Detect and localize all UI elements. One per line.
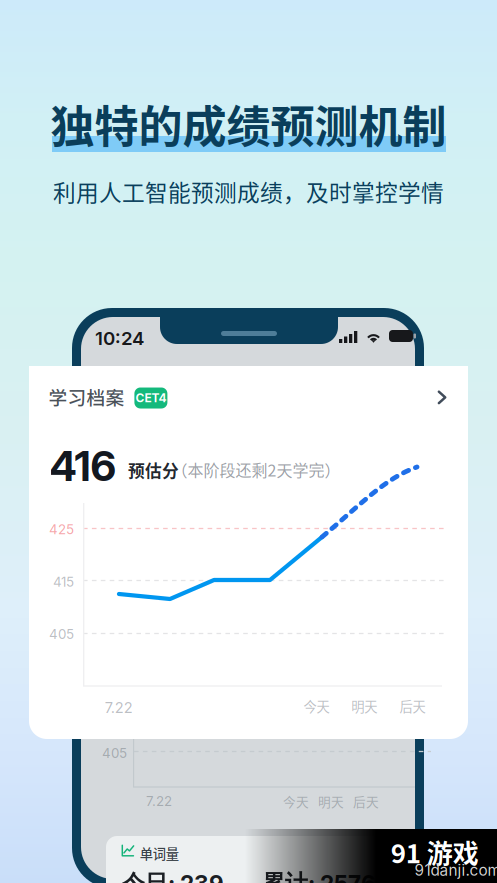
staticText: 学习档案 bbox=[48, 383, 124, 410]
staticText: 7.22 bbox=[146, 793, 172, 809]
staticText: 今日: 239 bbox=[122, 869, 224, 883]
staticText: 单词量 bbox=[140, 843, 179, 863]
staticText: 91 游戏 bbox=[391, 833, 479, 871]
staticText: 累计: 2576 bbox=[262, 869, 376, 883]
staticText: 416 bbox=[50, 441, 117, 491]
staticText: 91danji.com bbox=[414, 861, 497, 880]
staticText: 独特的成绩预测机制 bbox=[50, 92, 446, 156]
staticText: 415 bbox=[53, 574, 74, 590]
staticText: 10:24 bbox=[95, 327, 144, 350]
staticText: 7.22 bbox=[105, 699, 133, 717]
staticText: 425 bbox=[49, 521, 74, 537]
staticText: 明天 bbox=[351, 696, 377, 715]
staticText: CET4 bbox=[135, 391, 166, 405]
staticText: （本阶段还剩2天学完） bbox=[171, 458, 340, 481]
staticText: 明天 bbox=[318, 792, 344, 810]
staticText: 405 bbox=[49, 626, 74, 642]
staticText: 405 bbox=[102, 745, 127, 761]
staticText: 后天 bbox=[353, 792, 379, 810]
button[interactable]: 学习档案 bbox=[29, 366, 468, 424]
staticText: 预估分 bbox=[128, 458, 179, 482]
staticText: 今天 bbox=[283, 792, 309, 810]
staticText: 后天 bbox=[400, 696, 426, 715]
staticText: 今天 bbox=[303, 696, 329, 715]
staticText: 利用人工智能预测成绩，及时掌控学情 bbox=[53, 175, 444, 208]
